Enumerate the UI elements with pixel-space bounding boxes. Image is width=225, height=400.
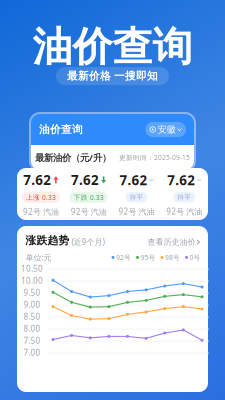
staticText: 9.00 — [23, 299, 40, 310]
staticText: 95号 — [140, 253, 155, 262]
staticText: (近9个月) — [71, 236, 104, 247]
staticText: 持平 — [177, 193, 191, 201]
staticText: 7.00 — [23, 347, 40, 358]
staticText: 安徽 — [157, 124, 175, 135]
staticText: 油价查询 — [32, 22, 192, 71]
staticText: 9.50 — [23, 287, 40, 298]
button[interactable]: 安徽 — [145, 122, 186, 137]
staticText: 7.62 — [23, 171, 51, 189]
staticText: 10.50 — [21, 263, 43, 274]
staticText: 上涨 0.33 — [26, 193, 56, 202]
staticText: 涨跌趋势 — [25, 234, 69, 247]
staticText: 油价查询 — [39, 123, 83, 136]
staticText: 92号 汽油 — [71, 206, 107, 217]
staticText: 7.62 — [119, 171, 147, 189]
staticText: 持平 — [129, 193, 143, 201]
staticText: 7.62 — [71, 171, 99, 189]
button[interactable]: 查看历史油价 — [147, 237, 200, 247]
staticText: 98号 — [165, 253, 180, 262]
staticText: 下跌 0.33 — [74, 193, 104, 202]
staticText: 更新时间：2025-09-15 — [119, 153, 190, 162]
staticText: 8.50 — [23, 311, 40, 322]
staticText: 92号 — [116, 253, 131, 262]
staticText: 0号 — [189, 253, 200, 262]
staticText: 查看历史油价 — [147, 237, 195, 247]
staticText: 最新油价（元/升） — [35, 151, 111, 164]
staticText: 单位:元 — [25, 252, 51, 263]
staticText: 92号 汽油 — [118, 206, 154, 217]
staticText: 8.00 — [23, 323, 40, 334]
staticText: 92号 汽油 — [23, 206, 59, 217]
staticText: 7.62 — [167, 171, 195, 189]
staticText: 最新价格 一搜即知 — [67, 69, 158, 83]
staticText: 92号 汽油 — [166, 206, 202, 217]
staticText: 10.00 — [21, 275, 43, 286]
staticText: 7.50 — [23, 335, 40, 346]
